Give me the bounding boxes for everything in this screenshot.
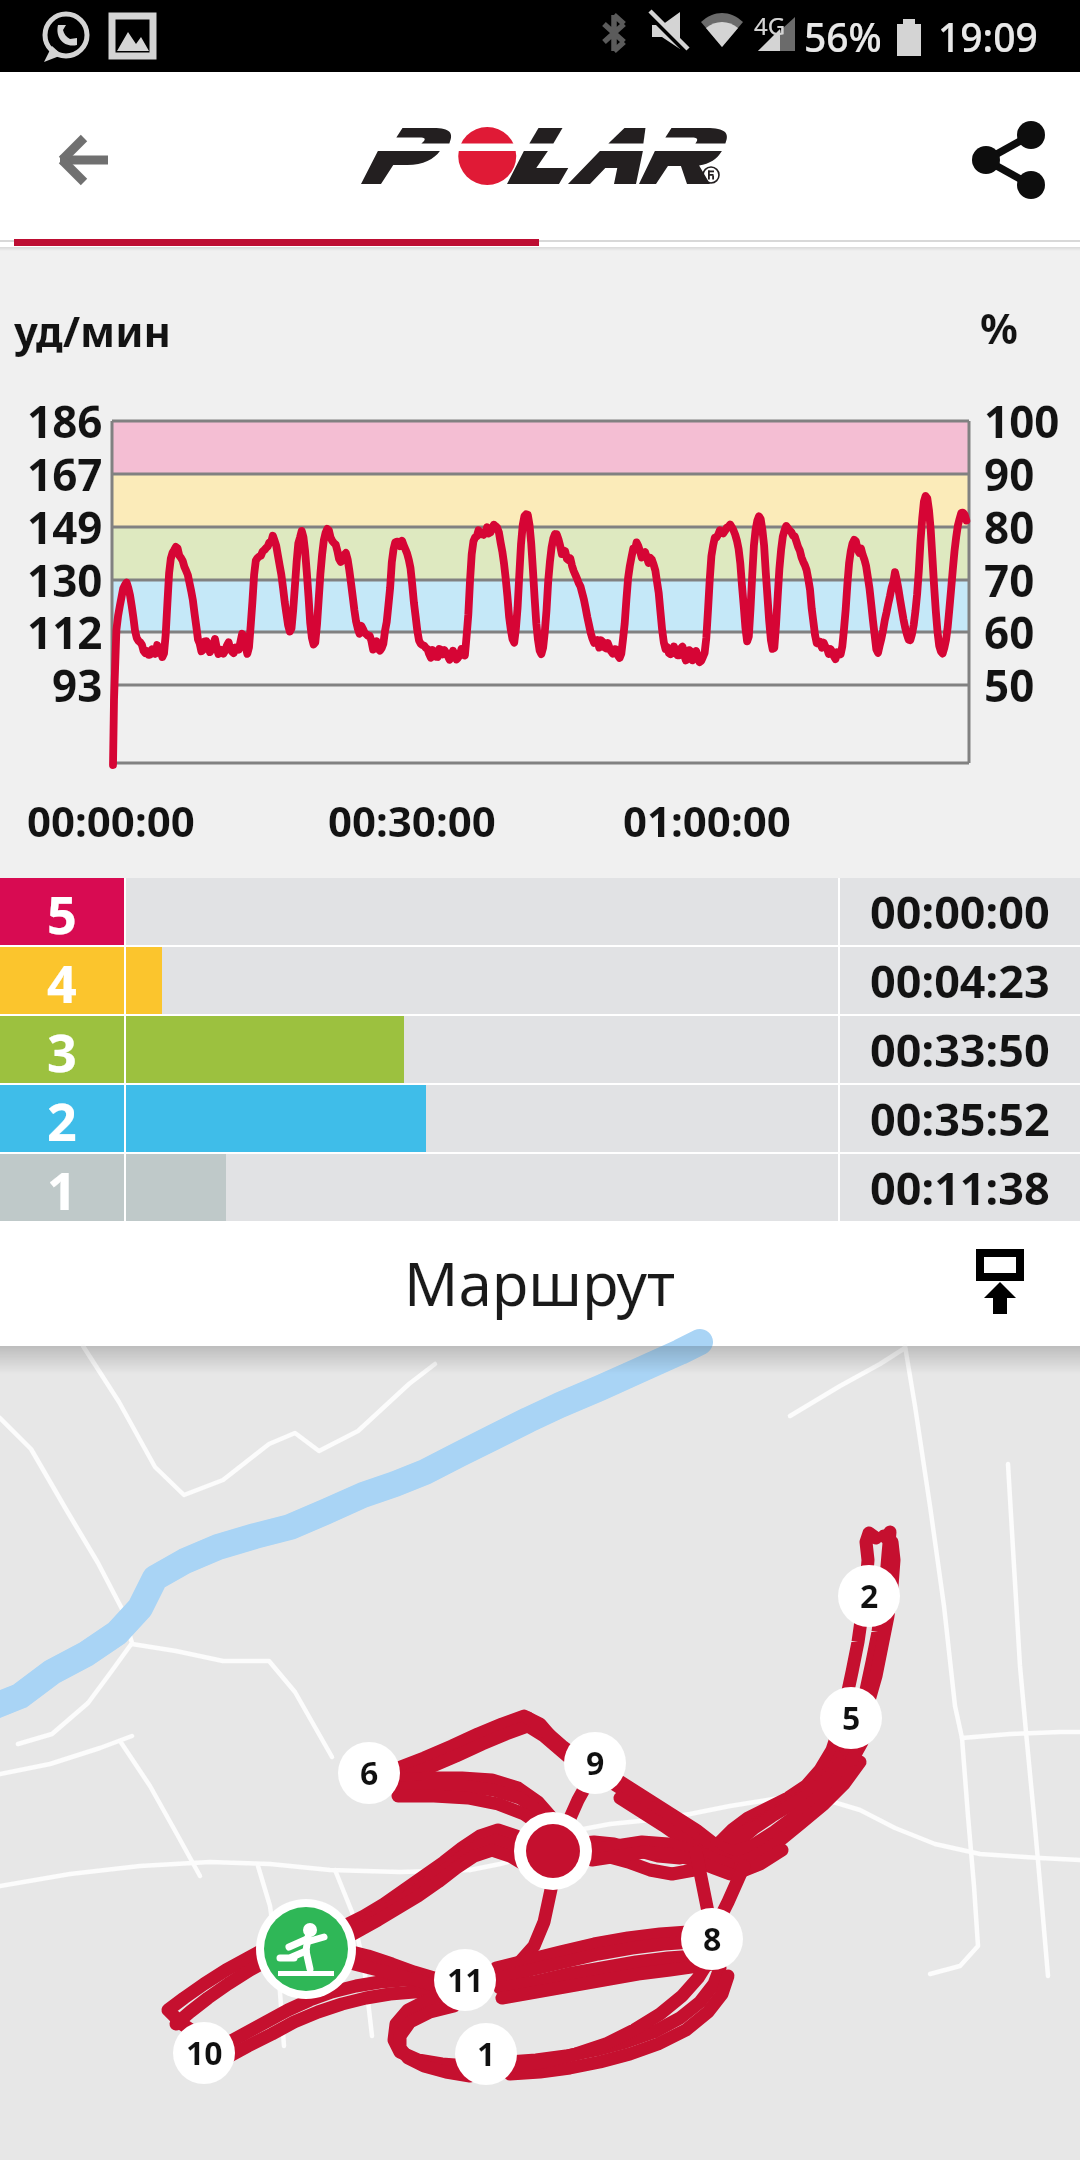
staticText: Маршрут bbox=[404, 1242, 676, 1324]
staticText: 100 bbox=[984, 391, 1060, 451]
staticText: 00:30:00 bbox=[328, 792, 496, 849]
staticText: 167 bbox=[27, 444, 103, 504]
staticText: 60 bbox=[984, 602, 1035, 662]
staticText: 5 bbox=[47, 878, 77, 945]
button[interactable]: Expand map bbox=[956, 1241, 1044, 1329]
button[interactable]: Маршрут bbox=[0, 1224, 1080, 1346]
button[interactable]: 1 bbox=[0, 1154, 1080, 1221]
staticText: 00:33:50 bbox=[870, 1019, 1050, 1080]
button[interactable]: 9 bbox=[564, 1732, 626, 1794]
button[interactable]: 4 bbox=[0, 947, 1080, 1014]
staticText: 186 bbox=[27, 391, 103, 451]
button[interactable]: 1 bbox=[455, 2023, 517, 2085]
button[interactable]: Start point bbox=[256, 1899, 356, 1999]
button[interactable]: 5 bbox=[820, 1687, 882, 1749]
button[interactable]: 8 bbox=[681, 1908, 743, 1970]
staticText: 4 bbox=[47, 947, 77, 1014]
button[interactable]: 5 bbox=[0, 878, 1080, 945]
staticText: % bbox=[980, 299, 1018, 356]
staticText: 00:11:38 bbox=[870, 1157, 1050, 1218]
button[interactable]: Details tab bbox=[540, 200, 1080, 247]
button[interactable]: Heart rate tab bbox=[0, 200, 540, 247]
staticText: 2 bbox=[47, 1085, 77, 1152]
staticText: 00:00:00 bbox=[870, 881, 1050, 942]
staticText: 149 bbox=[27, 497, 103, 557]
staticText: 00:35:52 bbox=[870, 1088, 1050, 1149]
staticText: 5 bbox=[842, 1696, 861, 1740]
staticText: 90 bbox=[984, 444, 1035, 504]
staticText: 56% bbox=[804, 10, 882, 63]
staticText: 50 bbox=[984, 655, 1035, 715]
staticText: 1 bbox=[477, 2032, 496, 2076]
staticText: 4G bbox=[754, 9, 786, 42]
staticText: 00:04:23 bbox=[870, 950, 1050, 1011]
button[interactable]: Back bbox=[28, 105, 138, 215]
staticText: 93 bbox=[52, 655, 103, 715]
button[interactable]: 11 bbox=[434, 1949, 496, 2011]
button[interactable]: 6 bbox=[338, 1742, 400, 1804]
staticText: 00:00:00 bbox=[27, 792, 195, 849]
staticText: 80 bbox=[984, 497, 1035, 557]
staticText: 112 bbox=[27, 602, 103, 662]
button[interactable]: 3 bbox=[0, 1016, 1080, 1083]
staticText: 2 bbox=[860, 1574, 879, 1618]
staticText: 1 bbox=[47, 1154, 77, 1221]
staticText: 70 bbox=[984, 550, 1035, 610]
staticText: уд/мин bbox=[14, 302, 172, 359]
staticText: 19:09 bbox=[938, 10, 1038, 63]
staticText: 11 bbox=[447, 1958, 484, 2002]
staticText: 130 bbox=[27, 550, 103, 610]
button[interactable]: 2 bbox=[838, 1565, 900, 1627]
staticText: 3 bbox=[47, 1016, 77, 1083]
button[interactable]: Share bbox=[956, 105, 1066, 215]
staticText: 6 bbox=[360, 1751, 379, 1795]
button[interactable]: 10 bbox=[173, 2022, 235, 2084]
staticText: 01:00:00 bbox=[623, 792, 791, 849]
button[interactable]: 2 bbox=[0, 1085, 1080, 1152]
staticText: 10 bbox=[186, 2031, 223, 2075]
staticText: 8 bbox=[703, 1917, 722, 1961]
staticText: 9 bbox=[586, 1741, 605, 1785]
